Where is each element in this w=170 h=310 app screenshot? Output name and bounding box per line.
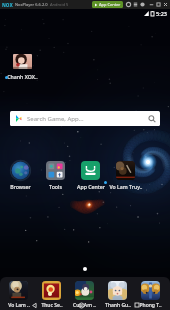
button[interactable]: Settings bbox=[125, 1, 132, 8]
button[interactable]: App Center bbox=[73, 161, 108, 190]
button[interactable]: Cuu Am .. bbox=[68, 281, 101, 309]
button[interactable]: Thuc Se.. bbox=[35, 281, 68, 309]
button[interactable]: Thanh Gu.. bbox=[101, 281, 134, 309]
button[interactable]: Minimize bbox=[148, 1, 155, 8]
staticText: Phong T.. bbox=[139, 302, 162, 309]
staticText: NOX bbox=[2, 2, 13, 8]
button[interactable]: Chanh XOX.. bbox=[5, 54, 40, 80]
button[interactable]: Vo Lam Truy.. bbox=[108, 161, 143, 190]
button[interactable]: Phong T.. bbox=[134, 281, 167, 309]
staticText: Browser bbox=[10, 183, 31, 190]
button[interactable]: Browser bbox=[3, 161, 38, 190]
staticText: Tools bbox=[49, 183, 62, 190]
staticText: Thanh Gu.. bbox=[105, 302, 131, 309]
button[interactable]: Recents bbox=[133, 301, 141, 309]
button[interactable]: Vo Lam .. bbox=[2, 281, 35, 309]
staticText: Search Game, App... bbox=[27, 115, 84, 123]
staticText: 5:23 bbox=[156, 10, 167, 17]
button[interactable]: Tools bbox=[38, 161, 73, 190]
button[interactable]: Volume bbox=[139, 1, 146, 8]
button[interactable]: Keyboard bbox=[132, 1, 139, 8]
staticText: Vo Lam .. bbox=[8, 302, 30, 309]
button[interactable]: App Center bbox=[92, 1, 123, 8]
staticText: App Center bbox=[77, 183, 105, 190]
staticText: Cuu Am .. bbox=[73, 302, 96, 309]
button[interactable]: Home bbox=[77, 301, 85, 309]
staticText: Android 5 bbox=[50, 2, 69, 7]
button[interactable]: Maximize bbox=[155, 1, 162, 8]
staticText: App Center bbox=[99, 2, 121, 7]
staticText: Vo Lam Truy.. bbox=[109, 183, 143, 190]
button[interactable]: Close bbox=[162, 1, 169, 8]
button[interactable]: Back bbox=[30, 301, 38, 309]
button[interactable]: Search Game, App... bbox=[10, 111, 160, 126]
staticText: NoxPlayer 6.6.2.0 bbox=[15, 2, 48, 7]
staticText: Thuc Se.. bbox=[41, 302, 63, 309]
staticText: Chanh XOX.. bbox=[7, 73, 38, 80]
